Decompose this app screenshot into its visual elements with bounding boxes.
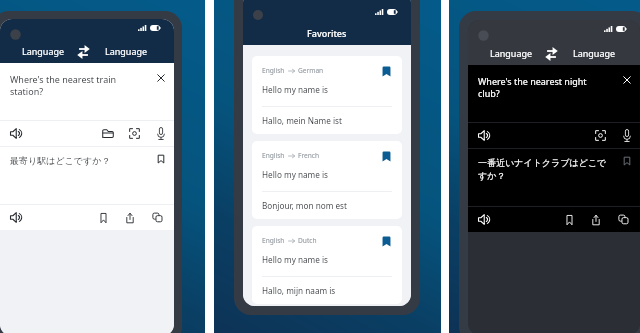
staticText: Hello my name is bbox=[262, 254, 329, 265]
staticText: Hallo, mein Name ist bbox=[262, 115, 342, 126]
staticText: English bbox=[262, 66, 285, 75]
button[interactable]: Language bbox=[104, 45, 149, 57]
button[interactable]: Bookmark bbox=[622, 156, 632, 166]
button[interactable]: Scan bbox=[129, 128, 140, 139]
button[interactable]: Play audio bbox=[478, 130, 491, 141]
button[interactable]: Language bbox=[572, 47, 617, 59]
staticText: French bbox=[298, 151, 320, 160]
button[interactable]: Language bbox=[21, 45, 66, 57]
button[interactable]: Share bbox=[591, 214, 601, 226]
staticText: Dutch bbox=[298, 236, 317, 245]
staticText: 最寄り駅はどこですか？ bbox=[10, 155, 111, 166]
staticText: Bonjour, mon nom est bbox=[262, 200, 347, 211]
button[interactable]: Swap languages bbox=[545, 48, 558, 60]
button[interactable]: Copy bbox=[618, 214, 629, 225]
staticText: Language bbox=[105, 45, 148, 57]
staticText: Where's the nearest night club? bbox=[478, 75, 610, 100]
button[interactable]: Clear bbox=[156, 73, 166, 83]
button[interactable]: Clear bbox=[622, 75, 632, 85]
button[interactable]: Scan bbox=[595, 130, 606, 141]
staticText: Hallo, mijn naam is bbox=[262, 285, 336, 296]
staticText: Hello my name is bbox=[262, 84, 329, 95]
staticText: English bbox=[262, 151, 285, 160]
button[interactable]: Bookmark bbox=[156, 154, 166, 164]
staticText: German bbox=[298, 66, 324, 75]
staticText: 一番近いナイトクラブはどこですか？ bbox=[478, 157, 614, 181]
button[interactable]: English bbox=[252, 141, 402, 219]
staticText: Language bbox=[490, 47, 533, 59]
staticText: Where's the nearest train station? bbox=[10, 73, 144, 98]
button[interactable]: Copy bbox=[152, 212, 163, 223]
staticText: Favorites bbox=[307, 27, 347, 39]
staticText: English bbox=[262, 236, 285, 245]
button[interactable]: Microphone bbox=[622, 129, 632, 142]
staticText: Language bbox=[22, 45, 65, 57]
button[interactable]: Play audio bbox=[10, 128, 23, 139]
staticText: Hello my name is bbox=[262, 169, 329, 180]
button[interactable]: English bbox=[252, 226, 402, 304]
button[interactable]: Swap languages bbox=[77, 46, 90, 58]
button[interactable]: Bookmark bbox=[99, 212, 108, 224]
button[interactable]: Bookmark bbox=[565, 214, 574, 226]
button[interactable]: Share bbox=[125, 212, 135, 224]
button[interactable]: Microphone bbox=[156, 127, 166, 140]
button[interactable]: Folder bbox=[102, 128, 114, 139]
staticText: Language bbox=[573, 47, 616, 59]
button[interactable]: Play audio bbox=[478, 214, 491, 225]
button[interactable]: Play audio bbox=[10, 212, 23, 223]
button[interactable]: Language bbox=[489, 47, 534, 59]
button[interactable]: English bbox=[252, 56, 402, 134]
